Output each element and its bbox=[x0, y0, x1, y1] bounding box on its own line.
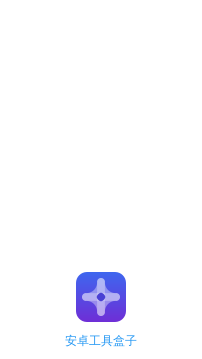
staticText: 安卓工具盒子 bbox=[65, 333, 137, 348]
